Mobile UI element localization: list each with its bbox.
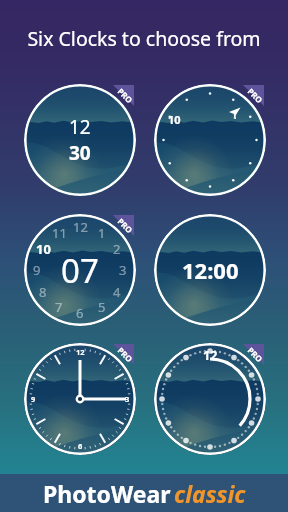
staticText: 6 bbox=[78, 441, 83, 451]
button[interactable]: Watch face 1 bbox=[24, 84, 136, 196]
staticText: 8 bbox=[39, 283, 47, 301]
staticText: 11 bbox=[52, 224, 67, 242]
staticText: 12:00 bbox=[182, 255, 239, 285]
button[interactable]: Watch face 2 bbox=[154, 84, 266, 196]
staticText: 3 bbox=[125, 394, 130, 404]
staticText: 12 bbox=[73, 218, 88, 236]
staticText: 10 bbox=[36, 240, 51, 258]
button[interactable]: Watch face 5 bbox=[24, 343, 136, 455]
staticText: 2 bbox=[113, 240, 121, 258]
staticText: PRO bbox=[246, 345, 265, 364]
staticText: classic bbox=[174, 478, 246, 509]
staticText: 1 bbox=[98, 224, 106, 242]
staticText: 9 bbox=[33, 261, 41, 279]
staticText: 30 bbox=[69, 140, 91, 166]
staticText: 5 bbox=[98, 298, 106, 316]
staticText: PRO bbox=[116, 345, 135, 364]
button[interactable]: PhotoWear bbox=[0, 474, 288, 512]
staticText: PRO bbox=[116, 216, 135, 235]
staticText: 7 bbox=[55, 298, 63, 316]
staticText: Six Clocks to choose from bbox=[27, 25, 261, 52]
staticText: 4 bbox=[113, 283, 121, 301]
staticText: 10 bbox=[168, 112, 181, 127]
staticText: 3 bbox=[119, 261, 127, 279]
staticText: 12 bbox=[76, 347, 85, 357]
button[interactable]: Watch face 3 bbox=[24, 214, 136, 326]
staticText: PRO bbox=[246, 86, 265, 105]
staticText: 07 bbox=[61, 248, 99, 293]
button[interactable]: Watch face 4 bbox=[154, 214, 266, 326]
staticText: 12 bbox=[203, 347, 218, 364]
staticText: PRO bbox=[116, 86, 135, 105]
staticText: 6 bbox=[76, 304, 84, 322]
staticText: 9 bbox=[31, 394, 36, 404]
button[interactable]: Watch face 6 bbox=[154, 343, 266, 455]
staticText: 12 bbox=[69, 114, 91, 140]
staticText: PhotoWear bbox=[43, 478, 171, 509]
